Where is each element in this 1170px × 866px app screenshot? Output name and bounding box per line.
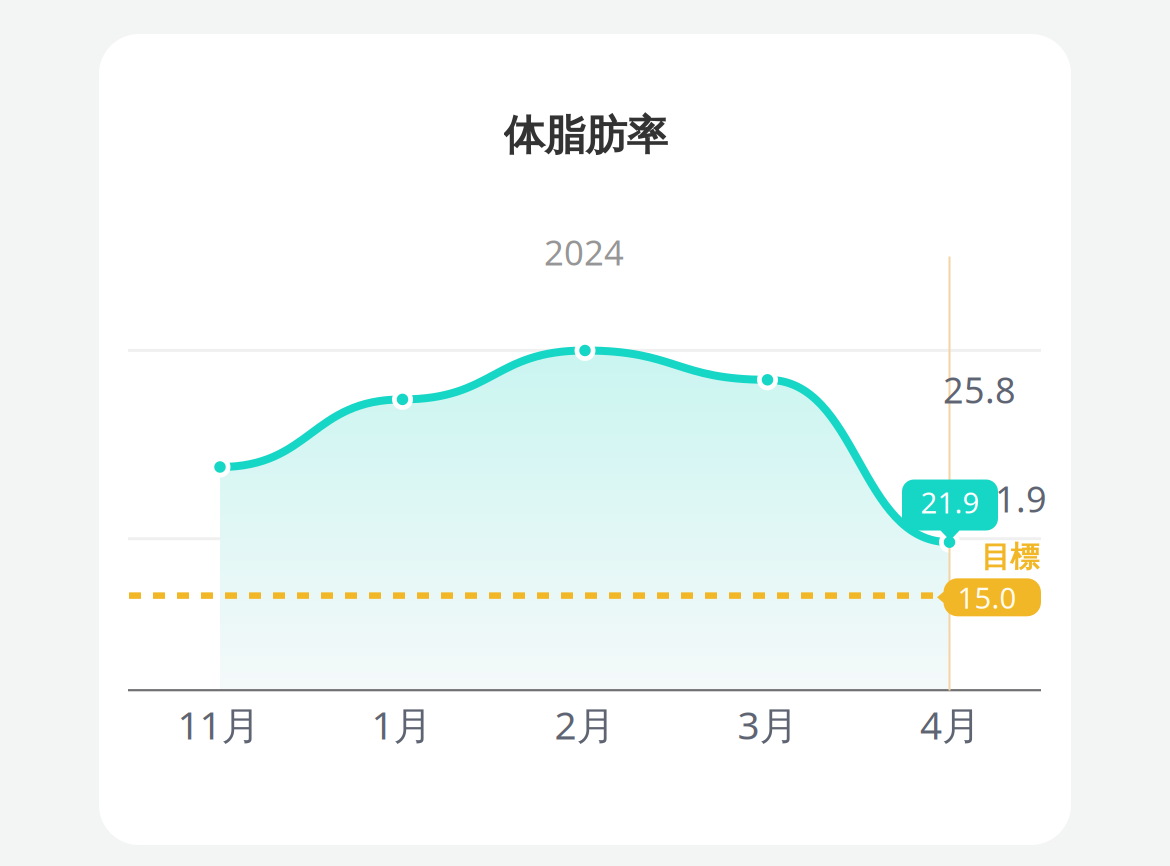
staticText: 体脂肪率 (503, 110, 667, 161)
staticText: 1月 (371, 699, 432, 750)
staticText: 3月 (737, 699, 798, 750)
button[interactable]: 体脂肪率 chart, 21.9, goal 15.0 (0, 0, 1170, 866)
staticText: 目標 (981, 539, 1039, 575)
staticText: 2024 (544, 229, 624, 275)
staticText: 11月 (177, 699, 260, 750)
staticText: 4月 (920, 699, 981, 750)
staticText: 21.9 (974, 475, 1047, 522)
staticText: 2月 (554, 699, 615, 750)
staticText: 25.8 (943, 366, 1016, 413)
staticText: 15.0 (957, 578, 1016, 617)
staticText: 21.9 (920, 482, 979, 521)
